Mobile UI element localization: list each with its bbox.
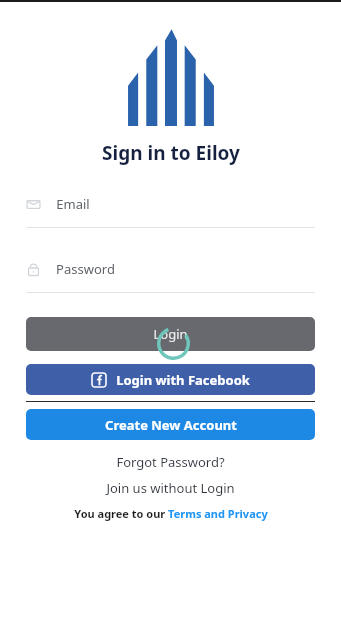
staticText: You agree to our Terms and Privacy bbox=[74, 506, 268, 521]
staticText: Login bbox=[153, 325, 188, 343]
button[interactable]: Forgot Password? bbox=[26, 453, 315, 471]
button[interactable]: Join us without Login bbox=[26, 479, 315, 497]
staticText: Login with Facebook bbox=[116, 371, 250, 389]
button[interactable]: Login bbox=[26, 317, 315, 351]
other: Email bbox=[26, 197, 41, 212]
staticText: Join us without Login bbox=[106, 479, 235, 497]
staticText: Sign in to Eiloy bbox=[102, 140, 240, 166]
button[interactable]: Email bbox=[26, 192, 315, 216]
staticText: Create New Account bbox=[105, 416, 237, 434]
other: Password bbox=[26, 262, 41, 277]
button[interactable]: Password bbox=[26, 257, 315, 281]
staticText: Forgot Password? bbox=[116, 453, 225, 471]
button[interactable]: Create New Account bbox=[26, 409, 315, 440]
other: Loading bbox=[157, 327, 190, 360]
button[interactable]: Login with Facebook bbox=[26, 364, 315, 395]
staticText: Email bbox=[56, 195, 90, 213]
button[interactable]: You agree to our Terms and Privacy bbox=[26, 506, 315, 521]
staticText: Password bbox=[56, 260, 115, 278]
